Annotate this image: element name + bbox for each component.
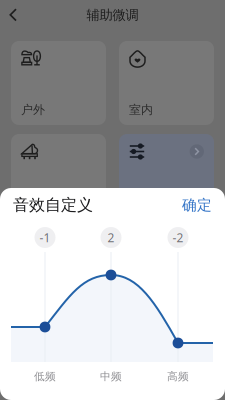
button[interactable]: 室内 (119, 41, 214, 125)
button[interactable]: 2 (100, 227, 121, 248)
staticText: 户外 (21, 102, 45, 117)
staticText: 确定 (182, 196, 212, 214)
staticText: 低频 (34, 370, 56, 383)
staticText: 高频 (167, 370, 189, 383)
button[interactable] (119, 134, 214, 218)
staticText: 音效自定义 (13, 195, 93, 215)
staticText: 室内 (129, 102, 153, 117)
button[interactable]: -1 (34, 227, 55, 248)
staticText: -1 (39, 229, 50, 245)
staticText: 中频 (100, 370, 122, 383)
staticText: 2 (107, 229, 114, 245)
button[interactable]: 确定 (172, 190, 212, 220)
button[interactable]: 户外 (11, 41, 106, 125)
button[interactable]: -2 (167, 227, 188, 248)
button[interactable] (11, 134, 106, 218)
staticText: -2 (172, 229, 183, 245)
button[interactable]: 返回 (0, 1, 28, 29)
staticText: 辅助微调 (86, 7, 138, 23)
